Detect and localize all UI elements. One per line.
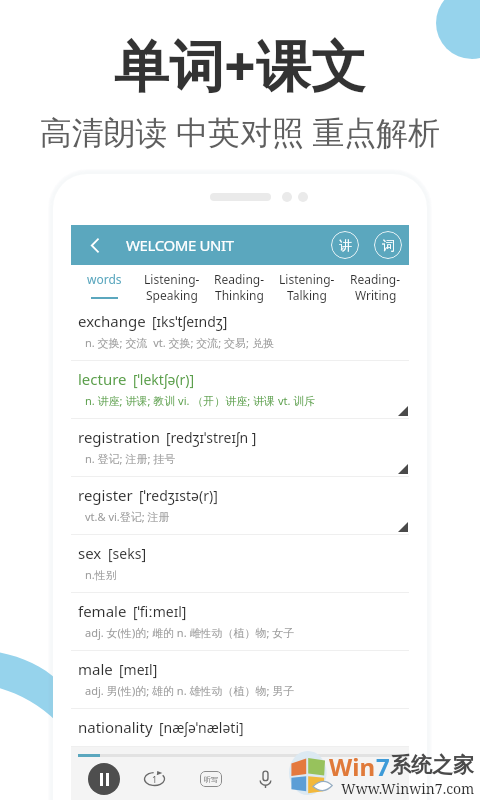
button[interactable]: 听写 [200,771,222,787]
staticText: Reading- [350,271,401,287]
staticText: n. 登记; 注册; 挂号 [85,451,176,466]
staticText: 1 [152,773,158,785]
button[interactable]: exchange [71,303,409,361]
staticText: 讲 [339,237,352,253]
staticText: Reading- [214,271,265,287]
staticText: 词 [382,237,395,253]
staticText: [redʒɪˈstreɪʃn ] [166,428,257,447]
staticText: n. 交换; 交流 vt. 交换; 交流; 交易; 兑换 [85,335,274,350]
staticText: [ɪksˈtʃeɪndʒ] [152,312,228,331]
staticText: registration [78,427,160,447]
staticText: 系统之家 [390,752,474,778]
button[interactable]: Listening- [273,265,341,303]
staticText: n. 讲座; 讲课; 教训 vi. （开）讲座; 讲课 vt. 训斥 [85,393,316,408]
button[interactable]: register [71,477,409,535]
staticText: WELCOME UNIT [126,235,234,255]
button[interactable]: Repeat once [143,768,166,790]
staticText: n.性别 [85,567,117,582]
staticText: sex [78,543,102,563]
button[interactable]: Listening- [138,265,205,303]
button[interactable]: Pause [88,763,120,795]
staticText: Www.Winwin7.com [341,779,475,798]
staticText: exchange [78,311,146,331]
staticText: female [78,601,127,621]
staticText: Speaking [146,287,198,303]
staticText: nationality [78,717,153,737]
staticText: words [87,271,122,287]
button[interactable]: registration [71,419,409,477]
staticText: adj. 男(性)的; 雄的 n. 雄性动（植）物; 男子 [85,683,295,698]
button[interactable]: 讲 [331,231,359,259]
staticText: [seks] [108,544,146,563]
staticText: [ˈlektʃə(r)] [133,370,195,389]
button[interactable]: Reading- [341,265,409,303]
button[interactable]: nationality [71,709,409,747]
staticText: register [78,485,133,505]
staticText: adj. 女(性)的; 雌的 n. 雌性动（植）物; 女子 [85,625,295,640]
button[interactable]: Microphone [254,768,276,790]
staticText: 7 [376,750,390,783]
staticText: 听写 [204,775,218,784]
staticText: male [78,659,113,679]
staticText: vt.& vi.登记; 注册 [85,509,170,524]
staticText: Listening- [144,271,200,287]
staticText: [næʃəˈnæləti] [159,718,244,737]
button[interactable]: Back [82,232,108,258]
button[interactable]: female [71,593,409,651]
staticText: Talking [287,287,327,303]
staticText: 高清朗读 中英对照 重点解析 [0,110,480,154]
button[interactable]: words [71,265,138,303]
button[interactable]: lecture [71,361,409,419]
staticText: [meɪl] [119,660,158,679]
staticText: 单词+课文 [0,27,480,102]
button[interactable]: sex [71,535,409,593]
staticText: [ˈfiːmeɪl] [133,602,187,621]
staticText: [ˈredʒɪstə(r)] [139,486,218,505]
staticText: Writing [355,287,397,303]
button[interactable]: male [71,651,409,709]
staticText: lecture [78,369,127,389]
staticText: Thinking [215,287,264,303]
staticText: Listening- [279,271,335,287]
button[interactable]: Reading- [205,265,273,303]
staticText: Win [329,750,375,783]
button[interactable]: 词 [374,231,402,259]
